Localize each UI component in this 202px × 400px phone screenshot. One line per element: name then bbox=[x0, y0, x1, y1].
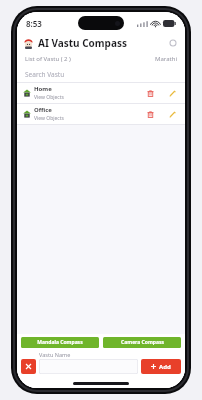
staticText: Camera Compass bbox=[121, 339, 164, 346]
button[interactable]: Search Vastu bbox=[17, 66, 185, 82]
staticText: Add bbox=[159, 363, 171, 371]
staticText: Vastu Name bbox=[39, 351, 71, 358]
staticText: Marathi bbox=[155, 55, 177, 63]
staticText: AI Vastu Compass bbox=[38, 36, 127, 50]
staticText: View Objects bbox=[34, 94, 64, 101]
button[interactable]: Close bbox=[21, 359, 36, 374]
staticText: View Objects bbox=[34, 115, 64, 122]
button[interactable]: Delete Office bbox=[143, 107, 157, 121]
button[interactable]: Mandala Compass bbox=[21, 337, 99, 348]
staticText: 8:53 bbox=[26, 18, 42, 29]
staticText: Office bbox=[34, 106, 52, 114]
button[interactable]: Add bbox=[141, 359, 181, 374]
button[interactable]: Delete Home bbox=[143, 86, 157, 100]
button[interactable]: Edit Home bbox=[165, 86, 179, 100]
button[interactable]: Camera Compass bbox=[103, 337, 181, 348]
button[interactable]: Edit Office bbox=[165, 107, 179, 121]
button[interactable]: Home bbox=[17, 83, 185, 103]
button[interactable]: Settings bbox=[167, 37, 179, 49]
staticText: Search Vastu bbox=[25, 70, 65, 79]
staticText: Mandala Compass bbox=[37, 339, 83, 346]
button[interactable]: Marathi bbox=[155, 55, 177, 63]
staticText: Home bbox=[34, 85, 52, 93]
button[interactable] bbox=[39, 359, 138, 374]
button[interactable]: Office bbox=[17, 104, 185, 124]
staticText: List of Vastu ( 2 ) bbox=[25, 55, 71, 63]
